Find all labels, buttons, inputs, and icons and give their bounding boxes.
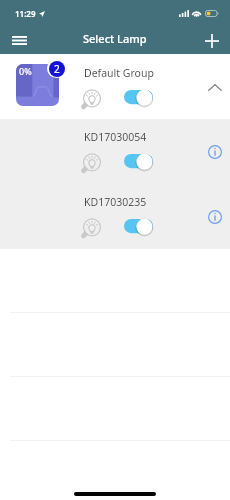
button[interactable]: Power toggle	[124, 90, 153, 107]
staticText: Default Group	[84, 66, 154, 80]
staticText: 2	[54, 62, 60, 76]
button[interactable]: Collapse group	[201, 74, 228, 101]
button[interactable]: Menu	[1, 22, 37, 58]
button[interactable]: Power toggle	[124, 219, 153, 236]
button[interactable]: Find lamp	[81, 88, 103, 110]
staticText: Select Lamp	[83, 31, 147, 46]
button[interactable]: Info	[201, 203, 228, 230]
staticText: 0%	[19, 65, 32, 77]
button[interactable]: Find lamp	[81, 217, 103, 239]
button[interactable]: KD17030235	[0, 184, 230, 249]
button[interactable]: Info	[201, 138, 228, 165]
staticText: KD17030054	[84, 130, 147, 144]
staticText: 11:29	[15, 8, 36, 19]
button[interactable]: KD17030054	[0, 119, 230, 184]
button[interactable]: 0%	[0, 54, 230, 119]
button[interactable]: Add	[194, 23, 230, 59]
staticText: KD17030235	[84, 195, 147, 209]
button[interactable]: Power toggle	[124, 154, 153, 171]
button[interactable]: Find lamp	[81, 152, 103, 174]
